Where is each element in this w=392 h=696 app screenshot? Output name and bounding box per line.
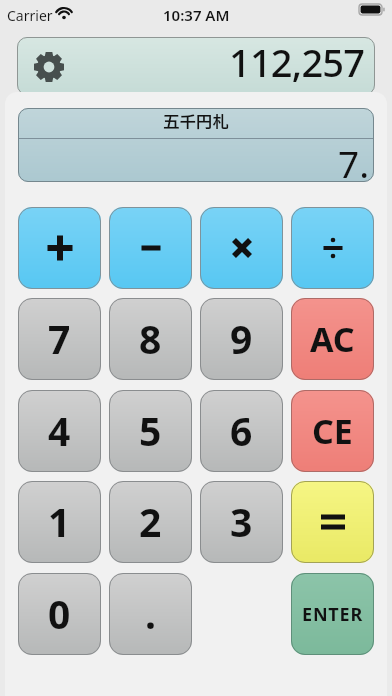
staticText: 9: [230, 312, 253, 365]
button[interactable]: ENTER: [291, 573, 374, 655]
staticText: 10:37 AM: [163, 5, 230, 25]
staticText: CE: [312, 408, 353, 454]
button[interactable]: .: [109, 573, 192, 655]
staticText: 8: [139, 312, 162, 365]
staticText: 0: [48, 587, 71, 640]
button[interactable]: 112,257: [17, 37, 375, 95]
staticText: 3: [230, 495, 253, 548]
staticText: ENTER: [302, 602, 363, 627]
button[interactable]: 2: [109, 481, 192, 563]
button[interactable]: 7: [18, 298, 101, 380]
button[interactable]: 3: [200, 481, 283, 563]
button[interactable]: [18, 207, 101, 289]
staticText: 5: [139, 404, 162, 457]
staticText: AC: [310, 316, 355, 362]
staticText: 7.: [338, 138, 370, 188]
staticText: Carrier: [7, 6, 53, 25]
staticText: 2: [139, 495, 162, 548]
staticText: 4: [48, 404, 71, 457]
button[interactable]: CE: [291, 390, 374, 472]
staticText: 6: [230, 404, 253, 457]
button[interactable]: [291, 207, 374, 289]
button[interactable]: [200, 207, 283, 289]
button[interactable]: 8: [109, 298, 192, 380]
button[interactable]: 6: [200, 390, 283, 472]
button[interactable]: 1: [18, 481, 101, 563]
button[interactable]: 5: [109, 390, 192, 472]
staticText: .: [145, 587, 156, 640]
button[interactable]: 五千円札: [18, 108, 374, 182]
staticText: 7: [48, 312, 71, 365]
staticText: 五千円札: [163, 111, 229, 136]
button[interactable]: AC: [291, 298, 374, 380]
button[interactable]: 0: [18, 573, 101, 655]
button[interactable]: 9: [200, 298, 283, 380]
button[interactable]: [109, 207, 192, 289]
staticText: 112,257: [229, 36, 365, 88]
button[interactable]: [291, 481, 374, 563]
button[interactable]: 4: [18, 390, 101, 472]
staticText: 1: [48, 495, 71, 548]
